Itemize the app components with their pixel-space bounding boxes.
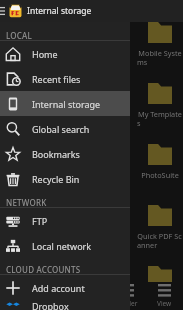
button[interactable]: Dropbox: [0, 300, 130, 310]
staticText: Internal storage: [32, 98, 101, 110]
staticText: My Template: [138, 109, 182, 119]
button[interactable]: Open navigation drawer: [0, 0, 7, 22]
button[interactable]: Quick PDF Sc: [129, 193, 183, 254]
staticText: Select: [45, 299, 64, 308]
button[interactable]: FTP: [0, 208, 130, 233]
button[interactable]: View: [146, 282, 183, 310]
button[interactable]: Bookmarks: [0, 141, 130, 166]
staticText: anner: [137, 240, 158, 248]
button[interactable]: Internal storage: [0, 91, 130, 116]
staticText: Movies: [86, 109, 111, 119]
staticText: Recent files: [32, 73, 81, 85]
staticText: Folder: [118, 299, 138, 308]
button[interactable]: Add account: [0, 275, 130, 300]
staticText: Mobile Syste: [138, 48, 182, 58]
button[interactable]: Download: [7, 254, 68, 310]
button[interactable]: Global search: [0, 116, 130, 141]
button[interactable]: Recycle Bin: [0, 166, 130, 191]
staticText: s: [76, 240, 80, 248]
button[interactable]: Alarms: [7, 10, 68, 71]
button[interactable]: Mobile Syste: [129, 10, 183, 71]
staticText: Global search: [32, 123, 90, 135]
staticText: View: [157, 299, 172, 308]
staticText: CLOUD ACCOUNTS: [6, 264, 81, 275]
staticText: Samsung: [144, 292, 176, 302]
staticText: FTP: [32, 215, 48, 227]
staticText: Home: [32, 48, 58, 60]
button[interactable]: Pictures: [68, 254, 129, 310]
button[interactable]: Sort: [0, 282, 36, 310]
button[interactable]: Samsung: [129, 254, 183, 310]
button[interactable]: Lost.dir: [68, 10, 129, 71]
staticText: Quick PDF Sc: [137, 231, 182, 241]
button[interactable]: Local network: [0, 233, 130, 258]
button[interactable]: Folder: [109, 282, 146, 310]
staticText: PhotoSuite: [141, 170, 179, 180]
button[interactable]: Music: [68, 132, 129, 193]
staticText: s: [137, 118, 141, 126]
staticText: NETWORK: [6, 197, 47, 208]
staticText: DCIM: [28, 170, 48, 180]
staticText: Bookmarks: [32, 148, 80, 160]
button[interactable]: Home: [0, 41, 130, 66]
staticText: Add account: [32, 282, 85, 294]
staticText: Alarms: [26, 48, 50, 58]
staticText: Recycle Bin: [32, 173, 80, 185]
button[interactable]: Movies: [68, 71, 129, 132]
staticText: Local network: [32, 240, 92, 252]
button[interactable]: Notification: [68, 193, 129, 254]
button[interactable]: Android: [7, 71, 68, 132]
staticText: ms: [137, 57, 148, 65]
staticText: Android: [24, 109, 52, 119]
staticText: Dropbox: [32, 300, 69, 310]
button[interactable]: PhotoSuite: [129, 132, 183, 193]
button[interactable]: Documents: [7, 193, 68, 254]
button[interactable]: Recent files: [0, 66, 130, 91]
staticText: Internal storage: [27, 5, 92, 17]
button[interactable]: New: [72, 282, 109, 310]
staticText: LOCAL: [6, 30, 32, 41]
button[interactable]: Select: [36, 282, 72, 310]
button[interactable]: DCIM: [7, 132, 68, 193]
button[interactable]: My Template: [129, 71, 183, 132]
staticText: Sort: [12, 299, 25, 308]
